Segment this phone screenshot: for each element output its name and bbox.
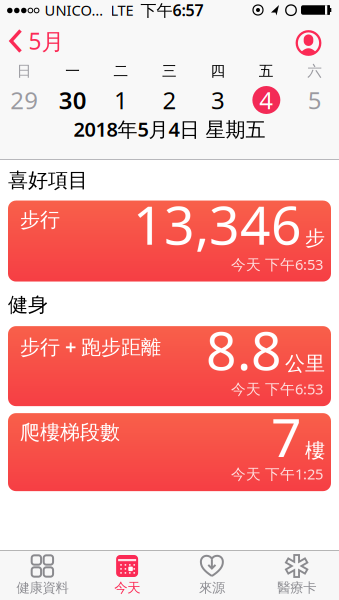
staticText: 4 — [259, 84, 273, 116]
staticText: 1 — [114, 84, 128, 116]
button[interactable] — [295, 30, 321, 56]
staticText: 三 — [162, 62, 177, 80]
staticText: 30 — [59, 84, 87, 116]
button[interactable]: 2 — [147, 85, 191, 115]
staticText: 樓 — [305, 438, 325, 463]
button[interactable]: 3 — [196, 85, 240, 115]
staticText: 健身 — [8, 293, 48, 317]
staticText: 5 — [308, 84, 322, 116]
staticText: 四 — [210, 62, 225, 80]
staticText: 2 — [162, 84, 176, 116]
staticText: 8.8 — [206, 314, 282, 385]
button[interactable]: 來源 — [169, 552, 254, 600]
staticText: 2018年5月4日 星期五 — [73, 116, 265, 142]
button[interactable]: 健康資料 — [0, 552, 85, 600]
staticText: 一 — [65, 62, 80, 80]
staticText: 步行 — [20, 208, 60, 232]
button[interactable]: 步行 — [8, 201, 331, 282]
staticText: 喜好項目 — [8, 168, 88, 193]
button[interactable]: 30 — [51, 85, 95, 115]
button[interactable]: 今天 — [85, 552, 170, 600]
button[interactable]: 4 — [244, 85, 288, 115]
button[interactable]: 1 — [99, 85, 143, 115]
button[interactable]: 步行 + 跑步距離 — [8, 326, 331, 406]
staticText: 爬樓梯段數 — [20, 420, 120, 445]
staticText: 29 — [10, 84, 38, 116]
button[interactable]: 醫療卡 — [254, 552, 339, 600]
staticText: 今天 下午1:25 — [231, 464, 323, 484]
staticText: 3 — [211, 84, 225, 116]
staticText: 7 — [271, 401, 302, 472]
staticText: 下午6:57 — [140, 0, 203, 21]
staticText: 步 — [305, 226, 325, 250]
staticText: 二 — [114, 62, 129, 80]
staticText: 今天 下午6:53 — [231, 255, 323, 274]
staticText: 六 — [307, 62, 322, 80]
button[interactable]: 29 — [2, 85, 46, 115]
staticText: 公里 — [285, 351, 325, 376]
staticText: 健康資料 — [16, 579, 68, 596]
staticText: 五 — [259, 62, 274, 80]
staticText: 5月 — [28, 26, 64, 56]
button[interactable]: 5 — [293, 85, 337, 115]
staticText: UNICO… — [44, 0, 103, 20]
staticText: 今天 下午6:53 — [231, 379, 323, 399]
staticText: LTE — [110, 0, 133, 20]
staticText: 醫療卡 — [277, 579, 316, 596]
staticText: 來源 — [199, 579, 225, 596]
staticText: 步行 + 跑步距離 — [20, 333, 161, 360]
staticText: 日 — [17, 62, 32, 80]
button[interactable]: 5月 — [1, 26, 64, 56]
staticText: 今天 — [114, 579, 140, 596]
staticText: 13,346 — [133, 189, 302, 259]
button[interactable]: 爬樓梯段數 — [8, 413, 331, 491]
